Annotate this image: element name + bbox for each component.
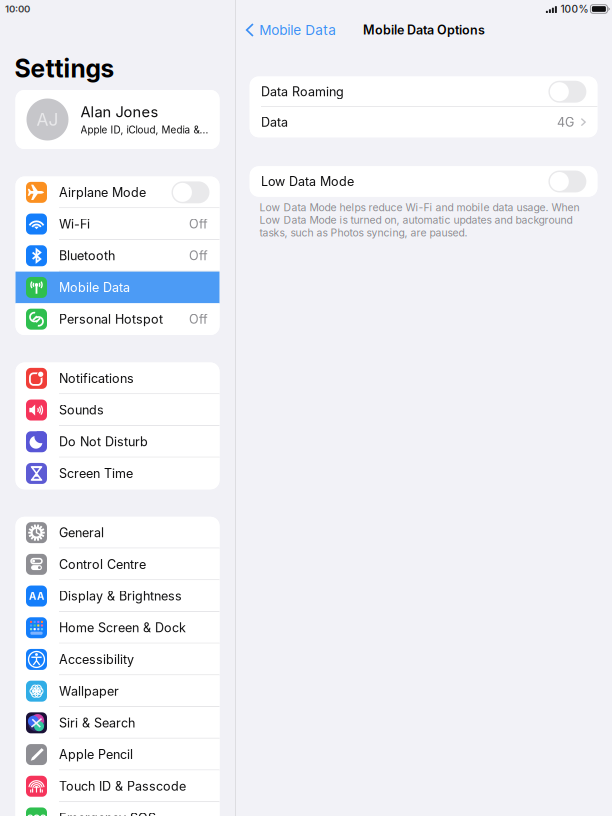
- staticText: Low Data Mode: [261, 174, 354, 189]
- button[interactable]: Screen Time: [15, 458, 219, 489]
- staticText: 10:00: [5, 3, 30, 15]
- staticText: Apple ID, iCloud, Media &...: [80, 124, 208, 136]
- staticText: Siri & Search: [59, 715, 135, 730]
- staticText: Notifications: [59, 371, 134, 386]
- button[interactable]: General: [15, 517, 219, 548]
- staticText: Wallpaper: [59, 684, 119, 699]
- button[interactable]: Siri & Search: [15, 707, 219, 739]
- staticText: Data: [261, 114, 288, 130]
- button[interactable]: Personal Hotspot: [15, 303, 219, 335]
- staticText: General: [59, 525, 104, 540]
- button[interactable]: Control Centre: [15, 548, 219, 580]
- staticText: Display & Brightness: [59, 588, 182, 604]
- staticText: Low Data Mode helps reduce Wi-Fi and mob…: [259, 201, 579, 239]
- staticText: Screen Time: [59, 466, 133, 481]
- button[interactable]: Notifications: [15, 362, 219, 394]
- staticText: AJ: [36, 109, 58, 130]
- staticText: Mobile Data: [259, 22, 336, 38]
- button[interactable]: Mobile Data: [15, 272, 219, 303]
- staticText: Do Not Disturb: [59, 434, 148, 449]
- staticText: Airplane Mode: [59, 185, 146, 200]
- staticText: Off: [189, 216, 208, 232]
- staticText: Bluetooth: [59, 248, 115, 263]
- button[interactable]: Do Not Disturb: [15, 426, 219, 458]
- button[interactable]: Data: [250, 107, 597, 137]
- button[interactable]: Apple Pencil: [15, 739, 219, 770]
- staticText: AA: [29, 590, 44, 602]
- button[interactable]: Low Data Mode: [250, 166, 597, 197]
- staticText: Off: [189, 248, 208, 263]
- staticText: Control Centre: [59, 557, 146, 572]
- button[interactable]: Bluetooth: [15, 240, 219, 272]
- button[interactable]: Wallpaper: [15, 675, 219, 707]
- staticText: Wi-Fi: [59, 216, 90, 232]
- button[interactable]: SOS: [15, 802, 219, 816]
- button[interactable]: Wi-Fi: [15, 208, 219, 240]
- button[interactable]: Accessibility: [15, 644, 219, 675]
- staticText: Alan Jones: [80, 103, 158, 121]
- button[interactable]: Airplane Mode: [15, 176, 219, 208]
- button[interactable]: AJ: [15, 90, 219, 149]
- staticText: SOS: [27, 812, 46, 816]
- button[interactable]: Sounds: [15, 394, 219, 426]
- staticText: Touch ID & Passcode: [59, 779, 186, 794]
- staticText: Sounds: [59, 402, 104, 418]
- staticText: Mobile Data: [59, 280, 130, 295]
- staticText: Data Roaming: [261, 84, 344, 99]
- button[interactable]: Data Roaming: [250, 76, 597, 107]
- button[interactable]: Home Screen & Dock: [15, 612, 219, 644]
- staticText: 4G: [557, 114, 574, 130]
- staticText: Settings: [14, 53, 114, 83]
- button[interactable]: AA: [15, 580, 219, 612]
- staticText: Off: [189, 312, 208, 327]
- button[interactable]: Mobile Data: [236, 19, 344, 41]
- button[interactable]: Touch ID & Passcode: [15, 770, 219, 802]
- staticText: Mobile Data Options: [363, 22, 485, 38]
- staticText: 100%: [560, 3, 588, 15]
- staticText: Emergency SOS: [59, 810, 156, 816]
- staticText: Home Screen & Dock: [59, 620, 186, 635]
- staticText: Apple Pencil: [59, 747, 133, 762]
- staticText: Personal Hotspot: [59, 312, 163, 327]
- staticText: Accessibility: [59, 652, 134, 667]
